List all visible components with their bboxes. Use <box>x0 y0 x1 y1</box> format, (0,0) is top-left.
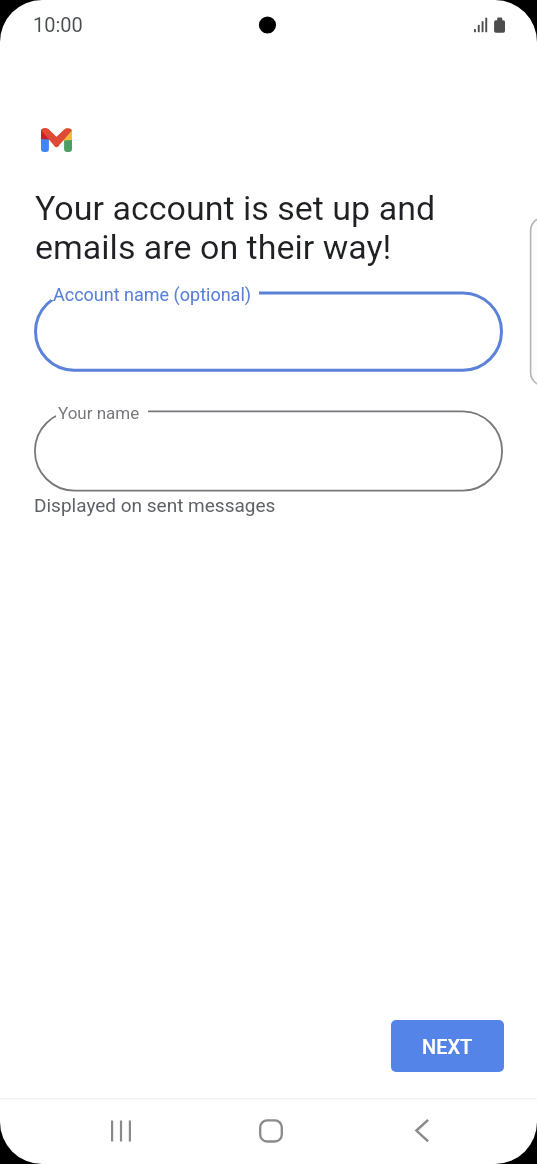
staticText: Displayed on sent messages <box>34 494 276 516</box>
staticText: Account name (optional) <box>53 284 252 305</box>
staticText: NEXT <box>422 1035 473 1058</box>
button[interactable]: Back <box>387 1101 457 1161</box>
staticText: Your name <box>58 403 140 423</box>
button[interactable] <box>34 411 503 492</box>
staticText: Your account is set up and emails are on… <box>35 188 436 267</box>
button[interactable] <box>34 292 503 372</box>
button[interactable]: Recent apps <box>86 1101 156 1161</box>
button[interactable]: NEXT <box>391 1020 504 1072</box>
staticText: 10:00 <box>33 13 83 36</box>
button[interactable]: Home <box>236 1101 306 1161</box>
